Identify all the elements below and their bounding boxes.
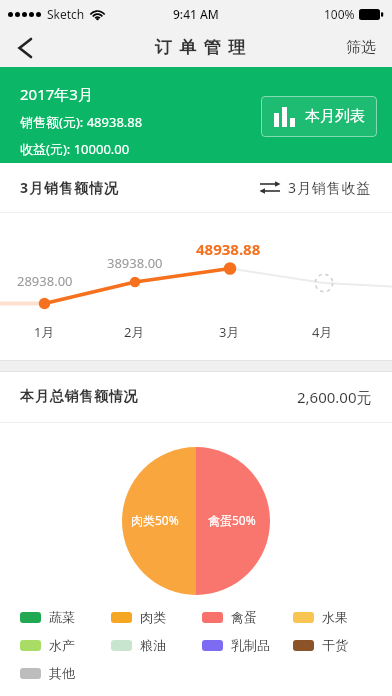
staticText: 1月 xyxy=(34,323,55,341)
staticText: 订单管理 xyxy=(151,37,249,58)
staticText: 粮油 xyxy=(140,637,166,653)
staticText: 38938.00 xyxy=(107,254,163,272)
staticText: 禽蛋 xyxy=(231,609,257,625)
staticText: 肉类50% xyxy=(131,512,179,528)
staticText: 4月 xyxy=(312,323,333,341)
button[interactable]: 本月列表 xyxy=(261,96,377,137)
staticText: 本月总销售额情况 xyxy=(20,388,139,406)
staticText: 3月销售额情况 xyxy=(20,178,120,197)
button[interactable]: 筛选 xyxy=(346,38,376,57)
staticText: 蔬菜 xyxy=(49,609,75,625)
staticText: 28938.00 xyxy=(17,272,73,290)
staticText: 肉类 xyxy=(140,609,166,625)
staticText: Sketch xyxy=(47,6,85,22)
button[interactable]: 3月销售收益 xyxy=(259,178,372,197)
staticText: 2月 xyxy=(124,323,145,341)
staticText: 本月列表 xyxy=(305,107,365,126)
button[interactable] xyxy=(8,32,40,64)
staticText: 水果 xyxy=(322,609,348,625)
staticText: 2017年3月 xyxy=(20,84,93,104)
staticText: 水产 xyxy=(49,637,75,653)
staticText: 9:41 AM xyxy=(173,6,219,22)
staticText: 2,600.00元 xyxy=(297,387,372,407)
staticText: 3月 xyxy=(219,323,240,341)
staticText: 100% xyxy=(324,6,355,22)
staticText: 干货 xyxy=(322,637,348,653)
staticText: 乳制品 xyxy=(231,637,270,653)
staticText: 3月销售收益 xyxy=(288,178,372,197)
staticText: 筛选 xyxy=(346,38,376,57)
staticText: 48938.88 xyxy=(196,239,261,259)
staticText: 禽蛋50% xyxy=(208,512,256,528)
staticText: 收益(元): 10000.00 xyxy=(20,140,130,158)
staticText: 其他 xyxy=(49,665,75,681)
staticText: 销售额(元): 48938.88 xyxy=(20,113,143,131)
